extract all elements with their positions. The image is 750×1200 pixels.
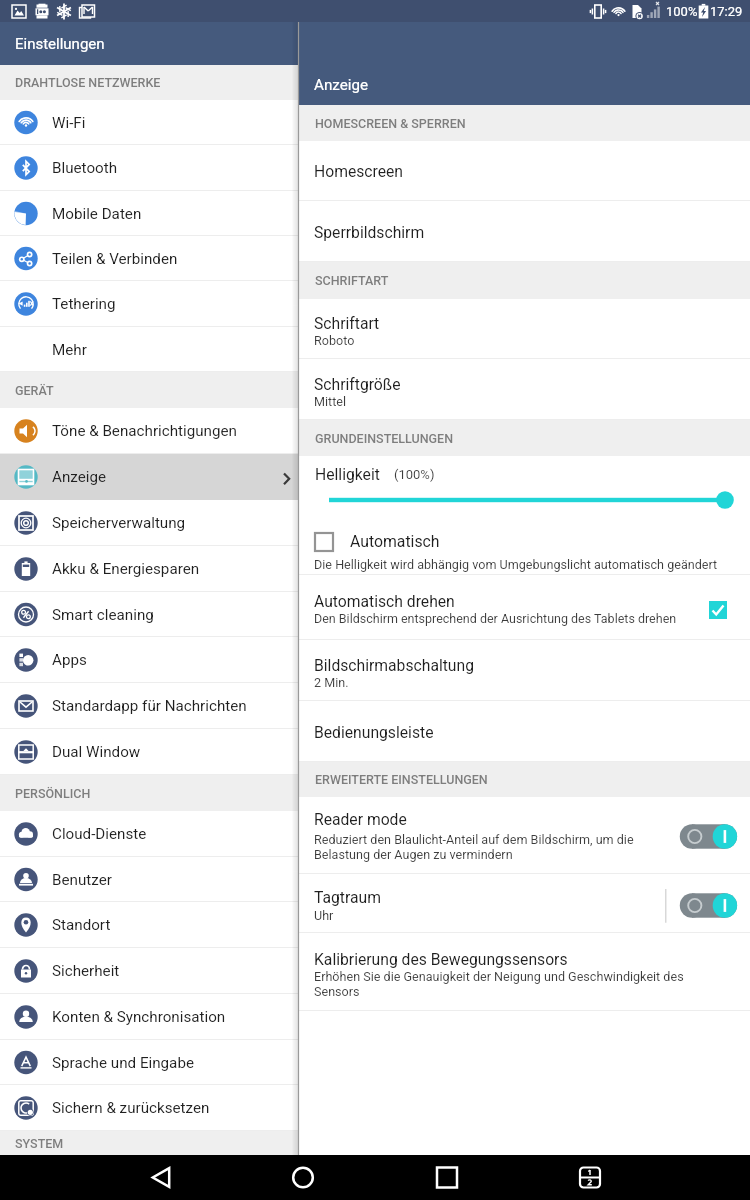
staticText: Schriftart xyxy=(314,314,380,332)
staticText: Smart cleaning xyxy=(52,606,154,624)
staticText: Konten & Synchronisation xyxy=(52,1008,226,1026)
button[interactable]: Töne & Benachrichtigungen xyxy=(0,408,299,454)
button[interactable]: Schriftart xyxy=(299,299,750,359)
staticText: Homescreen xyxy=(314,162,403,180)
staticText: ERWEITERTE EINSTELLUNGEN xyxy=(315,772,488,787)
staticText: 100% xyxy=(666,4,698,19)
staticText: DRAHTLOSE NETZWERKE xyxy=(15,75,161,90)
staticText: Mittel xyxy=(314,394,347,409)
button[interactable]: Standardapp für Nachrichten xyxy=(0,683,299,729)
button[interactable]: Akku & Energiesparen xyxy=(0,546,299,592)
staticText: SCHRIFTART xyxy=(315,273,389,288)
staticText: PERSÖNLICH xyxy=(15,786,91,801)
staticText: Cloud-Dienste xyxy=(52,825,147,843)
button[interactable]: Automatisch drehen xyxy=(299,575,750,640)
button[interactable]: Cloud-Dienste xyxy=(0,811,299,857)
button[interactable]: Split screen xyxy=(530,1155,650,1200)
staticText: Tagtraum xyxy=(314,888,381,906)
staticText: Automatisch xyxy=(350,532,440,551)
staticText: Anzeige xyxy=(314,76,369,94)
button[interactable]: Mobile Daten xyxy=(0,191,299,236)
button[interactable]: Sichern & zurücksetzen xyxy=(0,1085,299,1131)
button[interactable]: Sperrbildschirm xyxy=(299,201,750,262)
staticText: GERÄT xyxy=(15,383,54,398)
staticText: Benutzer xyxy=(52,871,112,889)
staticText: SYSTEM xyxy=(15,1136,64,1151)
staticText: Mehr xyxy=(52,341,87,359)
button[interactable]: Kalibrierung des Bewegungssensors xyxy=(299,933,750,1011)
staticText: Anzeige xyxy=(52,468,107,486)
staticText: Uhr xyxy=(314,908,334,923)
staticText: Standardapp für Nachrichten xyxy=(52,697,247,715)
button[interactable]: Bedienungsleiste xyxy=(299,701,750,762)
button[interactable]: Homescreen xyxy=(299,141,750,201)
staticText: Sperrbildschirm xyxy=(314,223,425,241)
staticText: Reader mode xyxy=(314,810,407,828)
button[interactable]: Anzeige xyxy=(0,454,299,500)
staticText: Helligkeit xyxy=(315,465,380,483)
button[interactable]: Mehr xyxy=(0,327,299,372)
staticText: Mobile Daten xyxy=(52,205,142,223)
staticText: Bedienungsleiste xyxy=(314,723,434,741)
staticText: Teilen & Verbinden xyxy=(52,250,178,268)
staticText: Sicherheit xyxy=(52,962,120,980)
staticText: Schriftgröße xyxy=(314,375,401,393)
button[interactable]: Apps xyxy=(0,637,299,683)
staticText: Erhöhen Sie die Genauigkeit der Neigung … xyxy=(314,969,684,999)
button[interactable]: Tagtraum xyxy=(299,874,750,933)
button[interactable]: Tethering xyxy=(0,281,299,327)
staticText: Wi-Fi xyxy=(52,114,86,132)
button[interactable]: Recent apps xyxy=(387,1155,507,1200)
button[interactable]: Dual Window xyxy=(0,729,299,775)
button[interactable]: Standort xyxy=(0,902,299,948)
button[interactable]: Automatisch xyxy=(299,519,750,575)
staticText: Apps xyxy=(52,651,87,669)
staticText: HOMESCREEN & SPERREN xyxy=(315,116,466,131)
button[interactable]: Bildschirmabschaltung xyxy=(299,640,750,701)
staticText: Töne & Benachrichtigungen xyxy=(52,422,237,440)
button[interactable]: Smart cleaning xyxy=(0,592,299,637)
button[interactable]: Teilen & Verbinden xyxy=(0,236,299,281)
button[interactable]: Konten & Synchronisation xyxy=(0,994,299,1040)
button[interactable]: Speicherverwaltung xyxy=(0,500,299,546)
staticText: Akku & Energiesparen xyxy=(52,560,200,578)
button[interactable]: Helligkeit xyxy=(299,456,750,519)
button[interactable]: Home xyxy=(243,1155,363,1200)
staticText: Einstellungen xyxy=(15,35,105,53)
staticText: Sichern & zurücksetzen xyxy=(52,1099,210,1117)
button[interactable]: Sicherheit xyxy=(0,948,299,994)
staticText: Speicherverwaltung xyxy=(52,514,186,532)
button[interactable]: Reader mode xyxy=(299,797,750,874)
staticText: Tethering xyxy=(52,295,116,313)
staticText: Dual Window xyxy=(52,743,141,761)
staticText: Reduziert den Blaulicht-Anteil auf dem B… xyxy=(314,832,634,862)
button[interactable]: Back xyxy=(101,1155,221,1200)
staticText: 17:29 xyxy=(710,4,743,19)
button[interactable]: Bluetooth xyxy=(0,145,299,191)
staticText: Sprache und Eingabe xyxy=(52,1054,194,1072)
staticText: Bluetooth xyxy=(52,159,118,177)
staticText: Bildschirmabschaltung xyxy=(314,656,474,674)
staticText: 2 Min. xyxy=(314,675,349,690)
button[interactable]: Schriftgröße xyxy=(299,359,750,420)
button[interactable]: Sprache und Eingabe xyxy=(0,1040,299,1085)
staticText: Den Bildschirm entsprechend der Ausricht… xyxy=(314,611,677,626)
staticText: (100%) xyxy=(394,467,435,482)
staticText: GRUNDEINSTELLUNGEN xyxy=(315,431,454,446)
button[interactable]: Wi-Fi xyxy=(0,100,299,145)
staticText: Automatisch drehen xyxy=(314,592,455,610)
staticText: Kalibrierung des Bewegungssensors xyxy=(314,950,568,968)
button[interactable]: Benutzer xyxy=(0,857,299,902)
staticText: Die Helligkeit wird abhängig vom Umgebun… xyxy=(314,557,718,572)
staticText: Roboto xyxy=(314,333,355,348)
staticText: Standort xyxy=(52,916,111,934)
